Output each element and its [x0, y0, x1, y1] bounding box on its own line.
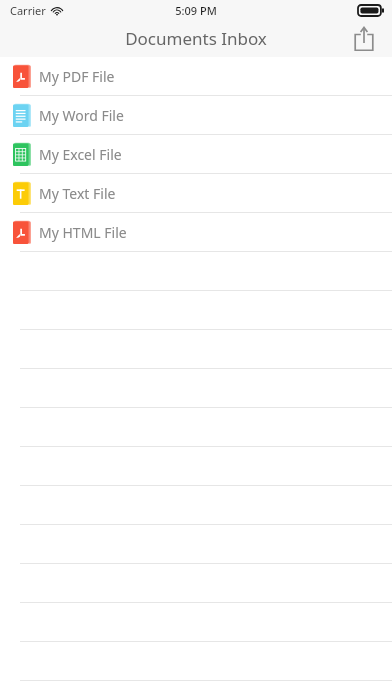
button[interactable]: My HTML File	[0, 213, 392, 251]
button[interactable]: My Text File	[0, 174, 392, 212]
button[interactable]: My PDF File	[0, 57, 392, 95]
staticText: My Text File	[39, 184, 116, 203]
staticText: My HTML File	[39, 223, 127, 242]
staticText: Documents Inbox	[125, 27, 267, 50]
button[interactable]: Share	[344, 20, 384, 57]
staticText: 5:09 PM	[175, 3, 217, 18]
staticText: My Excel File	[39, 145, 122, 164]
staticText: My Word File	[39, 106, 124, 125]
staticText: My PDF File	[39, 67, 115, 86]
button[interactable]: My Excel File	[0, 135, 392, 173]
staticText: Carrier	[10, 3, 46, 18]
button[interactable]: My Word File	[0, 96, 392, 134]
